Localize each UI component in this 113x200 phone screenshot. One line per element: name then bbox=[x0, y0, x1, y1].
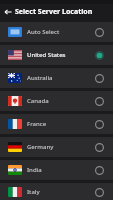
staticText: Canada bbox=[27, 97, 93, 105]
staticText: Italy bbox=[27, 188, 93, 196]
button[interactable]: Back bbox=[0, 4, 15, 19]
button[interactable]: Auto Select bbox=[0, 22, 113, 42]
staticText: Australia bbox=[27, 74, 93, 82]
button[interactable]: Germany bbox=[0, 137, 113, 157]
button[interactable]: France bbox=[0, 114, 113, 134]
button[interactable]: Australia bbox=[0, 68, 113, 88]
button[interactable]: United States bbox=[0, 45, 113, 65]
staticText: Select Server Location bbox=[15, 7, 93, 17]
button[interactable]: Canada bbox=[0, 91, 113, 111]
staticText: United States bbox=[27, 51, 93, 59]
staticText: France bbox=[27, 120, 93, 128]
button[interactable]: Italy bbox=[0, 183, 113, 200]
button[interactable]: India bbox=[0, 160, 113, 180]
staticText: India bbox=[27, 166, 93, 174]
staticText: Germany bbox=[27, 143, 93, 151]
staticText: Auto Select bbox=[27, 28, 93, 36]
